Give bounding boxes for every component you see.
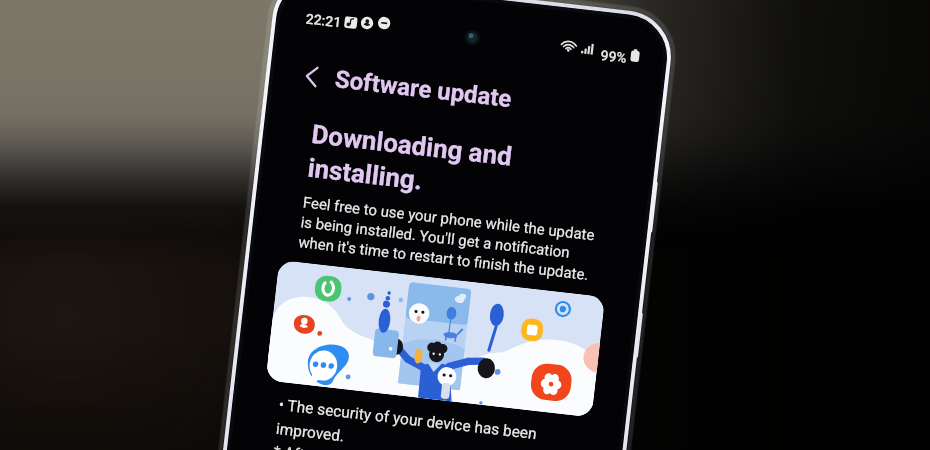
staticText: 22:21 (305, 10, 342, 30)
staticText: Feel free to use your phone while the up… (297, 193, 596, 283)
button[interactable]: Back (296, 60, 329, 93)
staticText: • The security of your device has been i… (273, 396, 538, 450)
button[interactable] (266, 260, 605, 417)
staticText: 99% (600, 47, 628, 66)
button[interactable]: Software update (333, 65, 513, 113)
staticText: Downloading and installing. (306, 119, 514, 205)
